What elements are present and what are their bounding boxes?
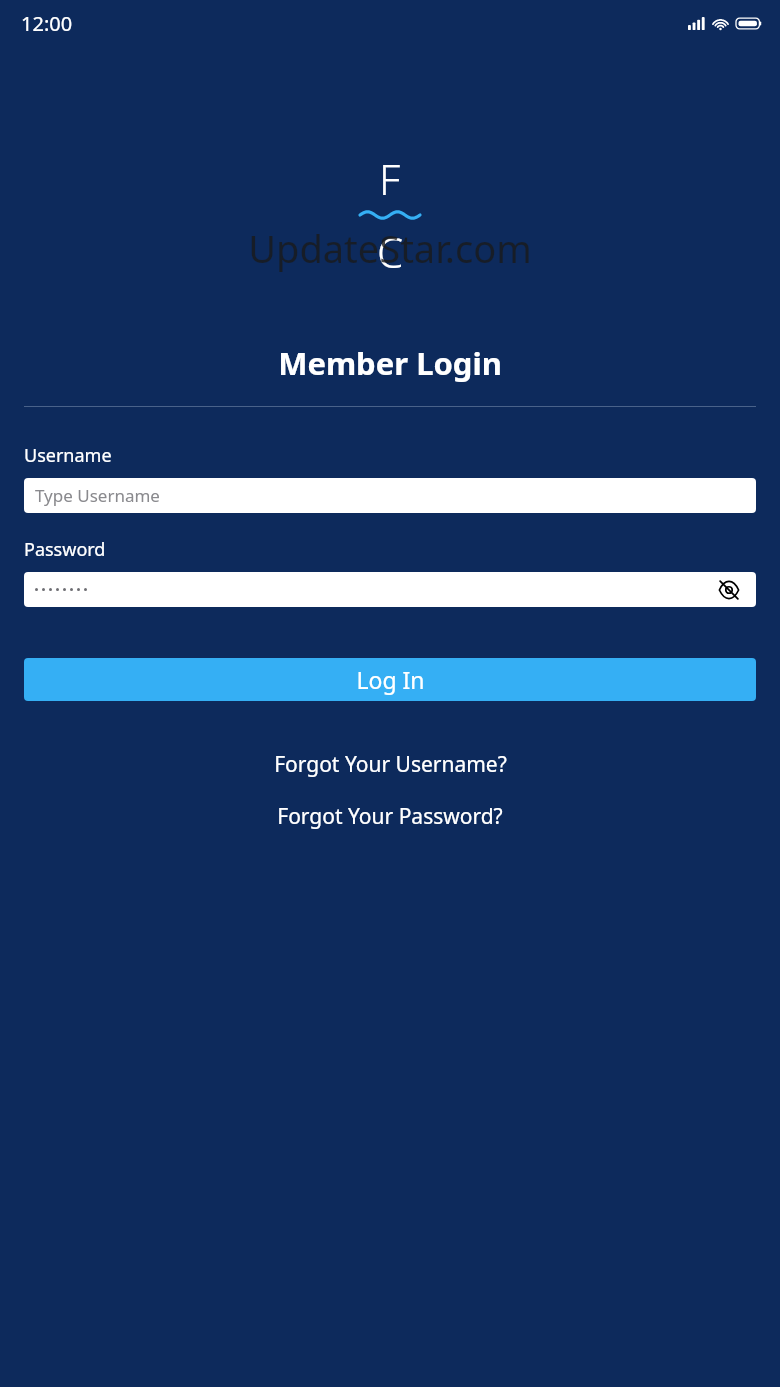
staticText: Forgot Your Username? bbox=[274, 750, 507, 779]
staticText: Username bbox=[24, 443, 112, 468]
staticText: 12:00 bbox=[21, 10, 73, 37]
staticText: C bbox=[377, 223, 404, 280]
staticText: UpdateStar.com bbox=[248, 222, 532, 274]
staticText: Forgot Your Password? bbox=[277, 802, 503, 831]
staticText: Member Login bbox=[278, 342, 502, 384]
staticText: Password bbox=[24, 537, 106, 562]
button[interactable]: Log In bbox=[24, 658, 756, 701]
staticText: Type Username bbox=[35, 484, 160, 507]
button[interactable]: Show password bbox=[714, 575, 744, 605]
button[interactable]: Forgot Your Username? bbox=[264, 746, 517, 783]
button[interactable]: Show password bbox=[24, 572, 756, 607]
staticText: F bbox=[379, 150, 401, 207]
button[interactable]: Forgot Your Password? bbox=[267, 798, 513, 835]
button[interactable]: Type Username bbox=[24, 478, 756, 513]
staticText: Log In bbox=[356, 664, 425, 695]
